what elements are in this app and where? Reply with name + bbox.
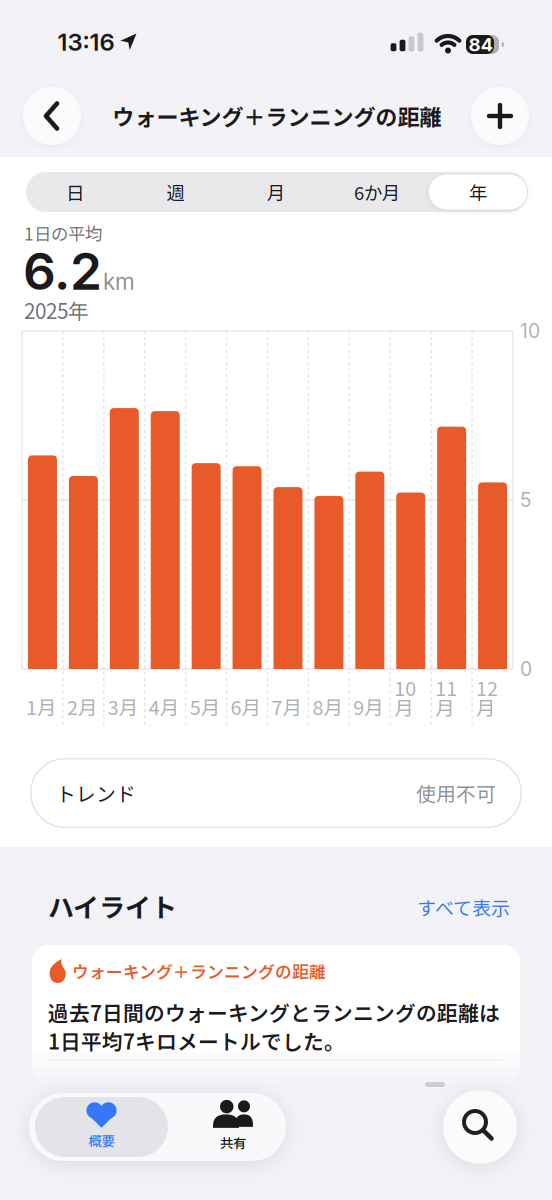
- button[interactable]: 戻る: [23, 87, 81, 145]
- staticText: 4月: [149, 692, 180, 721]
- staticText: 6.2: [23, 240, 102, 302]
- staticText: トレンド: [56, 779, 136, 807]
- staticText: 0: [520, 657, 532, 681]
- staticText: 3月: [108, 692, 139, 721]
- staticText: すべて表示: [417, 893, 510, 921]
- staticText: 年: [469, 179, 487, 205]
- staticText: ウォーキング＋ランニングの距離: [112, 100, 441, 132]
- staticText: 1月: [26, 692, 57, 721]
- staticText: 84: [468, 33, 493, 56]
- button[interactable]: 月: [228, 173, 324, 211]
- staticText: 月: [435, 693, 455, 721]
- staticText: 11: [435, 673, 457, 702]
- staticText: ウォーキング＋ランニングの距離: [72, 959, 326, 983]
- staticText: 2月: [67, 692, 98, 721]
- staticText: 日: [66, 179, 84, 205]
- staticText: 5月: [190, 692, 221, 721]
- button[interactable]: すべて表示: [417, 893, 510, 921]
- staticText: 月: [476, 693, 496, 721]
- staticText: 6月: [231, 692, 262, 721]
- button[interactable]: 週: [127, 173, 223, 211]
- button[interactable]: 概要: [35, 1095, 168, 1157]
- staticText: 共有: [220, 1133, 246, 1152]
- staticText: 7月: [271, 692, 302, 721]
- button[interactable]: トレンド: [30, 758, 522, 828]
- button[interactable]: 6か月: [329, 173, 425, 211]
- button[interactable]: 共有: [178, 1095, 288, 1157]
- staticText: 5: [520, 488, 531, 512]
- staticText: 13:16: [57, 27, 114, 56]
- staticText: 2025年: [24, 295, 89, 325]
- button[interactable]: 日: [27, 173, 123, 211]
- button[interactable]: ウォーキング＋ランニングの距離: [32, 945, 520, 1084]
- staticText: 10: [520, 319, 540, 343]
- staticText: 1日の平均: [24, 220, 102, 246]
- staticText: 過去7日間のウォーキングとランニングの距離は: [48, 997, 500, 1027]
- staticText: 6か月: [354, 179, 400, 205]
- staticText: km: [103, 268, 135, 295]
- staticText: 12: [476, 673, 498, 702]
- staticText: 週: [166, 179, 184, 205]
- staticText: 月: [394, 693, 414, 721]
- button[interactable]: 追加: [471, 87, 529, 145]
- staticText: 月: [267, 179, 285, 205]
- button[interactable]: 年: [430, 173, 526, 211]
- staticText: 1日平均7キロメートルでした。: [48, 1025, 345, 1055]
- staticText: ハイライト: [48, 887, 177, 925]
- staticText: 概要: [88, 1131, 114, 1150]
- staticText: 使用不可: [416, 779, 496, 807]
- staticText: 10: [394, 673, 416, 702]
- button[interactable]: 検索: [443, 1090, 517, 1164]
- staticText: 9月: [353, 692, 384, 721]
- staticText: 8月: [312, 692, 343, 721]
